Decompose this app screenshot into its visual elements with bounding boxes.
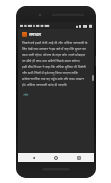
staticText: लिए देखें तथा सरकार ने इस बारे में कहा क…	[22, 46, 90, 51]
button[interactable]: Home	[49, 153, 63, 162]
other: App icon	[22, 32, 27, 37]
button[interactable]: Back	[27, 153, 41, 162]
staticText: हो। अधिक जानकारी जल्द दी जाएगी।	[22, 82, 90, 87]
button[interactable]: Recent apps	[72, 153, 86, 162]
button[interactable]: और	[22, 91, 30, 98]
staticText: प्रत्येक नागरिक तक यह पहुंच सके और काम आ…	[22, 76, 90, 81]
staticText: समाचार	[29, 32, 42, 37]
staticText: पर सीधे ही लाभ उठा सकेंगे जिससे समय बचेग…	[22, 58, 90, 63]
staticText: और	[23, 92, 29, 97]
staticText: इसी बीच विभाग ने कहा कि अधिक सुविधा भी म…	[22, 64, 90, 69]
button[interactable]: App icon	[22, 32, 90, 37]
staticText: काम जारी रहेगा। योजना के तहत लोग अपने मो…	[22, 52, 90, 57]
staticText: पिछले वर्ष इसमें तेजी आई थी और अधिक जानक…	[22, 40, 90, 45]
staticText: और सभी जिलों में इसे लागू किया जाएगा ताक…	[22, 70, 90, 75]
